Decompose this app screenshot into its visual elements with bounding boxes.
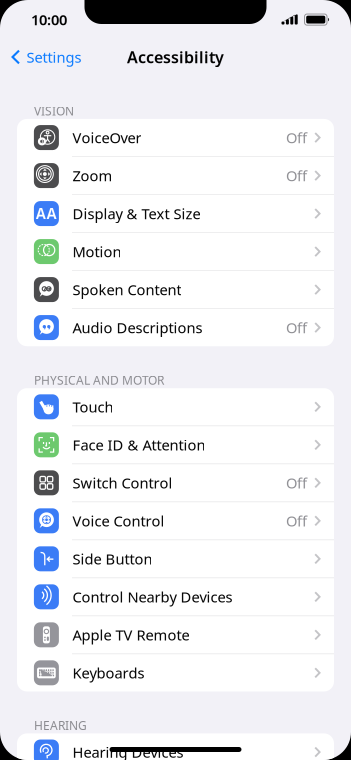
button[interactable]: Face ID & Attention: [17, 426, 334, 463]
staticText: Control Nearby Devices: [72, 587, 232, 607]
staticText: 10:00: [31, 10, 67, 29]
button[interactable]: Touch: [17, 388, 334, 425]
button[interactable]: Keyboards: [17, 654, 334, 691]
button[interactable]: Audio Descriptions: [17, 309, 334, 346]
button[interactable]: Settings: [0, 41, 81, 73]
staticText: Touch: [72, 397, 113, 417]
button[interactable]: Zoom: [17, 157, 334, 194]
staticText: Off: [286, 128, 307, 147]
staticText: Off: [286, 166, 307, 185]
button[interactable]: Spoken Content: [17, 271, 334, 308]
staticText: Spoken Content: [72, 280, 181, 299]
staticText: VISION: [34, 103, 74, 119]
staticText: Keyboards: [72, 663, 144, 683]
button[interactable]: Hearing Devices: [17, 733, 334, 760]
button[interactable]: Apple TV Remote: [17, 616, 334, 653]
button[interactable]: Side Button: [17, 540, 334, 577]
staticText: VoiceOver: [72, 128, 141, 147]
staticText: Zoom: [72, 166, 112, 185]
button[interactable]: Switch Control: [17, 464, 334, 501]
staticText: PHYSICAL AND MOTOR: [34, 372, 164, 388]
staticText: Motion: [72, 242, 121, 261]
staticText: Display & Text Size: [72, 204, 200, 223]
staticText: Side Button: [72, 549, 152, 569]
staticText: Face ID & Attention: [72, 435, 205, 455]
staticText: HEARING: [34, 717, 87, 733]
button[interactable]: Motion: [17, 233, 334, 270]
button[interactable]: Control Nearby Devices: [17, 578, 334, 615]
staticText: Audio Descriptions: [72, 318, 202, 337]
staticText: Apple TV Remote: [72, 625, 189, 645]
staticText: Settings: [26, 47, 81, 67]
button[interactable]: Voice Control: [17, 502, 334, 539]
staticText: Off: [286, 318, 307, 337]
staticText: Off: [286, 473, 307, 493]
staticText: AA: [34, 202, 58, 225]
staticText: Voice Control: [72, 511, 164, 531]
staticText: Off: [286, 511, 307, 531]
button[interactable]: VoiceOver: [17, 119, 334, 156]
staticText: Hearing Devices: [72, 742, 183, 760]
button[interactable]: AA: [17, 195, 334, 232]
staticText: Accessibility: [127, 46, 224, 68]
staticText: Switch Control: [72, 473, 172, 493]
